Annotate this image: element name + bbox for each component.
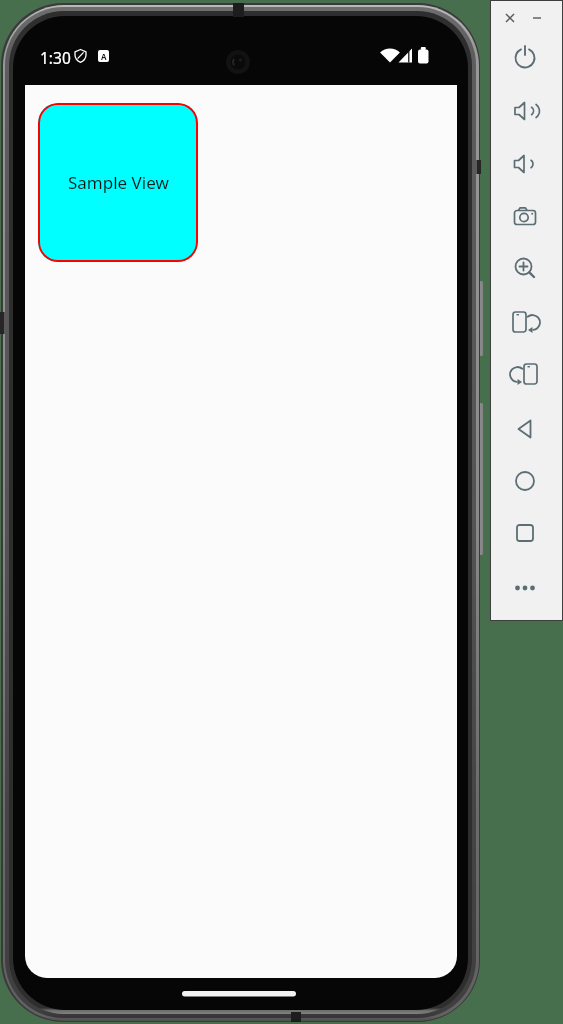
button[interactable] bbox=[505, 38, 545, 78]
button[interactable] bbox=[505, 513, 545, 553]
button[interactable] bbox=[505, 248, 545, 288]
button[interactable] bbox=[505, 409, 545, 449]
button[interactable] bbox=[503, 11, 517, 25]
button[interactable] bbox=[505, 144, 545, 184]
button[interactable] bbox=[505, 91, 545, 131]
staticText: 1:30 bbox=[40, 47, 71, 68]
button[interactable]: Sample View bbox=[38, 103, 198, 262]
button[interactable] bbox=[530, 11, 544, 25]
button[interactable] bbox=[505, 461, 545, 501]
staticText: Sample View bbox=[68, 171, 169, 194]
button[interactable] bbox=[505, 568, 545, 608]
button[interactable] bbox=[505, 302, 545, 342]
button[interactable] bbox=[505, 197, 545, 237]
staticText: A bbox=[101, 51, 107, 62]
button[interactable] bbox=[505, 354, 545, 394]
